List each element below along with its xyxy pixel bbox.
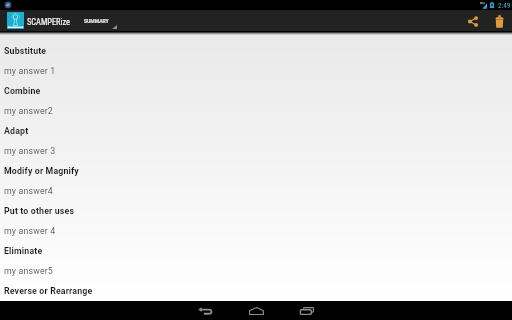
button[interactable]: my answer 4: [0, 221, 512, 241]
button[interactable]: Eliminate: [0, 241, 512, 261]
button[interactable]: Share: [462, 10, 484, 31]
staticText: 2:49: [498, 1, 511, 9]
button[interactable]: Reverse or Rearrange: [0, 281, 512, 301]
staticText: my answer 4: [4, 226, 56, 236]
staticText: Substitute: [4, 46, 47, 56]
button[interactable]: my answer5: [0, 261, 512, 281]
button[interactable]: my answer 1: [0, 61, 512, 81]
button[interactable]: Put to other uses: [0, 201, 512, 221]
button[interactable]: App icon: [7, 12, 24, 29]
staticText: Reverse or Rearrange: [4, 286, 93, 296]
button[interactable]: Substitute: [0, 41, 512, 61]
button[interactable]: SUMMARY: [84, 18, 109, 24]
staticText: Eliminate: [4, 246, 43, 256]
staticText: my answer 1: [4, 66, 56, 76]
button[interactable]: my answer2: [0, 101, 512, 121]
staticText: Modify or Magnify: [4, 166, 79, 176]
staticText: Combine: [4, 86, 41, 96]
button[interactable]: my answer4: [0, 181, 512, 201]
button[interactable]: Modify or Magnify: [0, 161, 512, 181]
button[interactable]: Home: [232, 301, 280, 320]
button[interactable]: Adapt: [0, 121, 512, 141]
button[interactable]: Back: [181, 301, 229, 320]
button[interactable]: my answer 3: [0, 141, 512, 161]
button[interactable]: Delete: [488, 10, 510, 31]
staticText: my answer 3: [4, 146, 56, 156]
button[interactable]: Recent apps: [283, 301, 331, 320]
staticText: SCAMPERize: [27, 17, 71, 27]
staticText: Put to other uses: [4, 206, 75, 216]
staticText: my answer4: [4, 186, 53, 196]
staticText: Adapt: [4, 126, 29, 136]
button[interactable]: Combine: [0, 81, 512, 101]
staticText: my answer2: [4, 106, 53, 116]
staticText: SUMMARY: [84, 18, 109, 24]
staticText: my answer5: [4, 266, 53, 276]
